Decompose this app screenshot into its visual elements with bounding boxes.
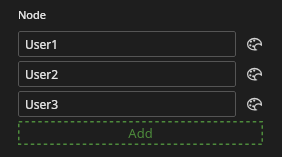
staticText: Node [18,7,46,22]
button[interactable]: User3 [18,91,236,117]
button[interactable]: Choose color for User2 [245,65,263,83]
button[interactable]: User2 [18,61,236,87]
button[interactable]: Choose color for User3 [245,95,263,113]
button[interactable]: Choose color for User1 [245,35,263,53]
button[interactable]: Add [18,121,263,145]
staticText: User2 [25,66,59,82]
staticText: User3 [25,96,59,112]
staticText: Add [128,124,153,142]
staticText: User1 [25,36,59,52]
button[interactable]: User1 [18,31,236,57]
